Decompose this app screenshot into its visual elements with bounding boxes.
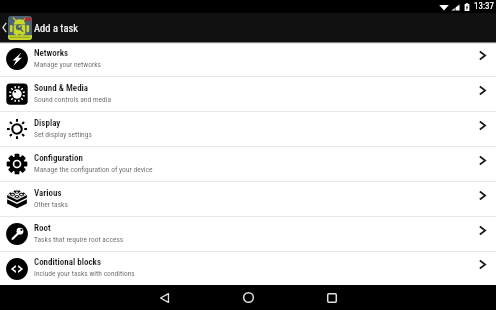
staticText: Manage the configuration of your device — [34, 165, 153, 174]
staticText: Sound controls and media — [34, 95, 112, 104]
staticText: Networks — [34, 48, 69, 59]
staticText: Root — [34, 223, 51, 234]
staticText: Sound & Media — [34, 83, 89, 94]
staticText: Tasks that require root access — [34, 235, 124, 244]
button[interactable]: Home — [206, 285, 290, 310]
button[interactable]: Conditional blocks — [0, 252, 496, 285]
staticText: 13:37 — [474, 1, 494, 12]
button[interactable]: Add a task — [0, 13, 496, 42]
button[interactable]: Recents — [290, 285, 374, 310]
staticText: Add a task — [34, 22, 78, 34]
staticText: Various — [34, 188, 62, 199]
button[interactable]: Display — [0, 112, 496, 146]
staticText: Set display settings — [34, 130, 92, 139]
staticText: Other tasks — [34, 200, 68, 209]
button[interactable]: Sound & Media — [0, 77, 496, 111]
button[interactable]: Configuration — [0, 147, 496, 181]
staticText: Configuration — [34, 153, 83, 164]
staticText: Manage your networks — [34, 60, 101, 69]
button[interactable]: Networks — [0, 42, 496, 76]
staticText: Conditional blocks — [34, 257, 102, 268]
button[interactable]: Various — [0, 182, 496, 216]
button[interactable]: Root — [0, 217, 496, 251]
staticText: Include your tasks with conditions — [34, 269, 135, 278]
staticText: Display — [34, 118, 61, 129]
button[interactable]: Back — [122, 285, 206, 310]
